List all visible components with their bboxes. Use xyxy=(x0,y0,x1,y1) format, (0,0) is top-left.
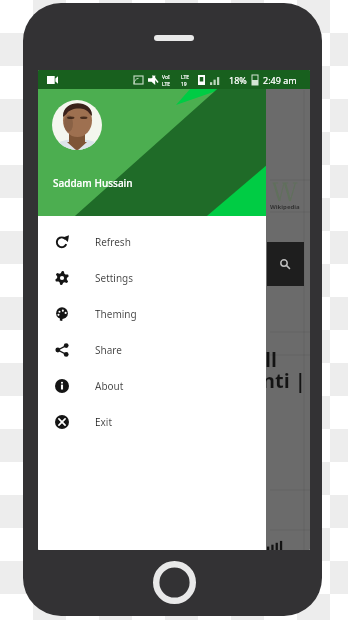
staticText: 18% xyxy=(229,74,247,86)
staticText: 2:49 am xyxy=(263,74,297,86)
button[interactable]: Exit xyxy=(38,404,266,440)
staticText: Share xyxy=(95,343,122,357)
staticText: About xyxy=(95,379,124,393)
staticText: Exit xyxy=(95,415,113,429)
button[interactable]: Theming xyxy=(38,296,266,332)
staticText: Settings xyxy=(95,271,134,285)
staticText: Wikipedia xyxy=(270,203,300,211)
button[interactable]: Share xyxy=(38,332,266,368)
button[interactable]: Refresh xyxy=(38,224,266,260)
button[interactable]: Search xyxy=(267,242,304,286)
staticText: VoI LTE xyxy=(162,74,171,87)
staticText: Theming xyxy=(95,307,137,321)
staticText: LTE 19 xyxy=(181,74,190,87)
button[interactable]: Saddam Hussain xyxy=(38,89,266,216)
button[interactable]: About xyxy=(38,368,266,404)
staticText: ll xyxy=(265,346,277,373)
staticText: Refresh xyxy=(95,235,131,249)
staticText: nti | xyxy=(262,367,306,394)
staticText: Saddam Hussain xyxy=(53,176,133,190)
button[interactable]: Settings xyxy=(38,260,266,296)
